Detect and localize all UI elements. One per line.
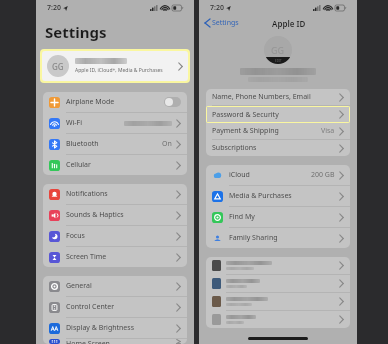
button[interactable]: Cellular — [43, 155, 187, 175]
button[interactable]: Bluetooth — [43, 134, 187, 155]
button[interactable] — [206, 293, 350, 310]
button[interactable] — [206, 257, 350, 274]
button[interactable]: Sounds & Haptics — [43, 205, 187, 226]
staticText: Wi-Fi — [66, 118, 83, 128]
button[interactable]: Payment & Shipping — [206, 123, 350, 139]
staticText: iCloud — [229, 170, 250, 180]
staticText: Visa — [321, 126, 335, 136]
button[interactable]: Name, Phone Numbers, Email — [206, 89, 350, 105]
staticText: 7:20 — [47, 3, 61, 13]
staticText: Sounds & Haptics — [66, 210, 124, 220]
button[interactable]: Notifications — [43, 184, 187, 205]
staticText: Cellular — [66, 160, 91, 170]
button[interactable]: Screen Time — [43, 247, 187, 267]
button[interactable]: Subscriptions — [206, 140, 350, 156]
staticText: Control Center — [66, 302, 115, 312]
staticText: Payment & Shipping — [212, 126, 279, 136]
staticText: Family Sharing — [229, 233, 278, 243]
staticText: Focus — [66, 231, 85, 241]
button[interactable]: Find My — [206, 207, 350, 228]
staticText: GG — [271, 44, 285, 56]
staticText: Display & Brightness — [66, 323, 135, 333]
button[interactable] — [206, 311, 350, 328]
button[interactable] — [206, 275, 350, 292]
staticText: Notifications — [66, 189, 108, 199]
button[interactable]: Password & Security — [207, 107, 349, 122]
button[interactable]: Settings — [205, 18, 239, 28]
staticText: General — [66, 281, 92, 291]
staticText: Apple ID — [272, 18, 306, 29]
staticText: Password & Security — [212, 110, 279, 120]
staticText: Airplane Mode — [66, 97, 115, 107]
staticText: 200 GB — [311, 170, 335, 180]
button[interactable]: iCloud — [206, 165, 350, 186]
button[interactable]: Home Screen — [43, 339, 187, 344]
staticText: Home Screen — [66, 339, 110, 344]
button[interactable]: Media & Purchases — [206, 186, 350, 207]
button[interactable]: Airplane Mode — [43, 92, 187, 113]
staticText: Media & Purchases — [229, 191, 292, 201]
button[interactable]: Focus — [43, 226, 187, 247]
staticText: GG — [52, 61, 64, 72]
staticText: Settings — [45, 22, 107, 42]
staticText: Apple ID, iCloud+, Media & Purchases — [75, 67, 163, 74]
staticText: Bluetooth — [66, 139, 99, 149]
staticText: Find My — [229, 212, 255, 222]
button[interactable]: Wi-Fi — [43, 113, 187, 134]
button[interactable]: Control Center — [43, 297, 187, 318]
staticText: EDIT — [275, 59, 282, 63]
staticText: Screen Time — [66, 252, 107, 262]
button[interactable]: GG — [42, 51, 188, 81]
staticText: On — [162, 139, 172, 149]
staticText: Name, Phone Numbers, Email — [212, 92, 311, 102]
button[interactable]: General — [43, 276, 187, 297]
button[interactable]: Display & Brightness — [43, 318, 187, 339]
button[interactable]: Family Sharing — [206, 228, 350, 248]
staticText: Settings — [212, 18, 239, 28]
staticText: 7:20 — [210, 3, 224, 13]
staticText: Subscriptions — [212, 143, 257, 153]
